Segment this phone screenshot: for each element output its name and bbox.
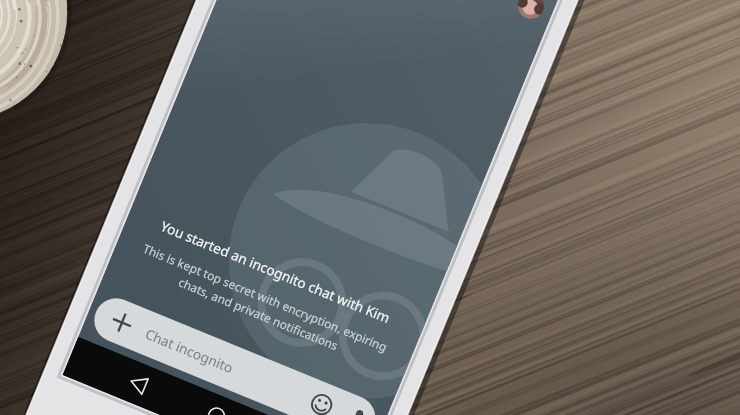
other: Incognito chat screen photo [0,0,740,415]
